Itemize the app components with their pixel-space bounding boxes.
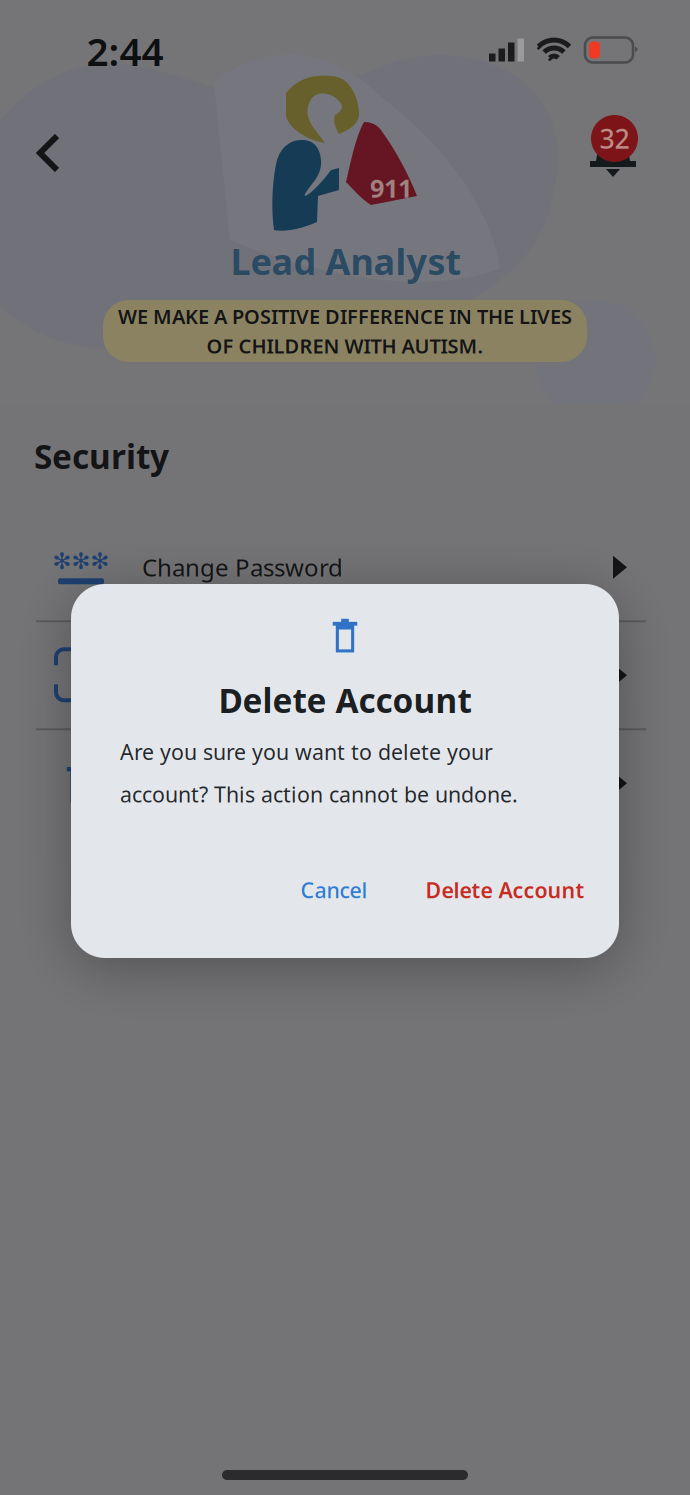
staticText: OF CHILDREN WITH AUTISM. xyxy=(206,332,483,359)
staticText: ✻✻✻ xyxy=(52,548,109,574)
staticText: Lead Analyst xyxy=(230,237,461,285)
staticText: Two-Factor Auth xyxy=(142,659,328,691)
button[interactable]: Cancel xyxy=(276,858,391,922)
staticText: Delete Account xyxy=(218,678,471,722)
staticText: Cancel xyxy=(300,876,367,904)
button[interactable]: ✻✻✻ xyxy=(8,514,688,620)
staticText: 911 xyxy=(370,171,412,205)
staticText: Delete Account xyxy=(425,876,584,904)
staticText: Delete Account xyxy=(142,767,316,799)
staticText: 2:44 xyxy=(86,25,163,77)
button[interactable]: Notifications xyxy=(574,108,654,188)
staticText: Are you sure you want to delete your xyxy=(120,738,493,766)
button[interactable]: Delete Account xyxy=(401,858,608,922)
staticText: account? This action cannot be undone. xyxy=(120,780,518,808)
button[interactable]: Delete Account xyxy=(8,730,688,836)
staticText: 32 xyxy=(599,121,629,156)
staticText: WE MAKE A POSITIVE DIFFERENCE IN THE LIV… xyxy=(118,303,572,329)
staticText: Security xyxy=(34,434,169,478)
button[interactable]: Two-Factor Auth xyxy=(8,622,688,728)
staticText: Change Password xyxy=(142,551,343,583)
button[interactable]: Back xyxy=(9,113,89,193)
